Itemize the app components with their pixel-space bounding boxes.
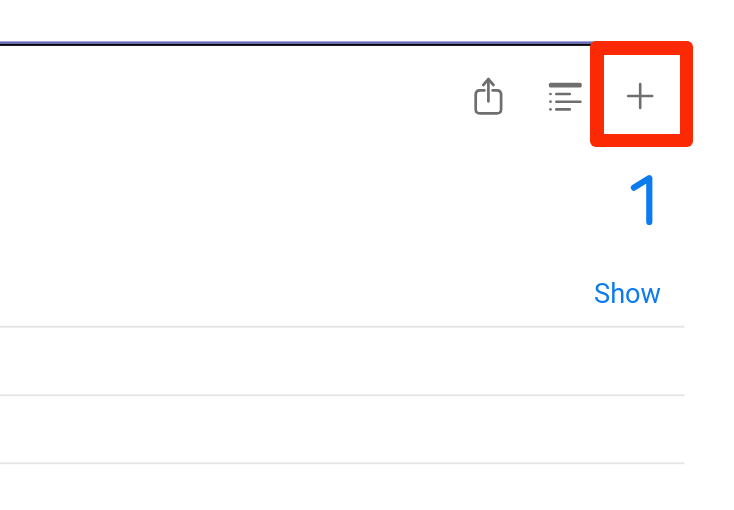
button[interactable]: Show bbox=[594, 278, 662, 310]
staticText: Show bbox=[594, 278, 662, 310]
button[interactable]: Outline bbox=[540, 70, 592, 122]
button[interactable]: Share bbox=[462, 68, 514, 120]
button[interactable]: Add bbox=[590, 41, 693, 147]
